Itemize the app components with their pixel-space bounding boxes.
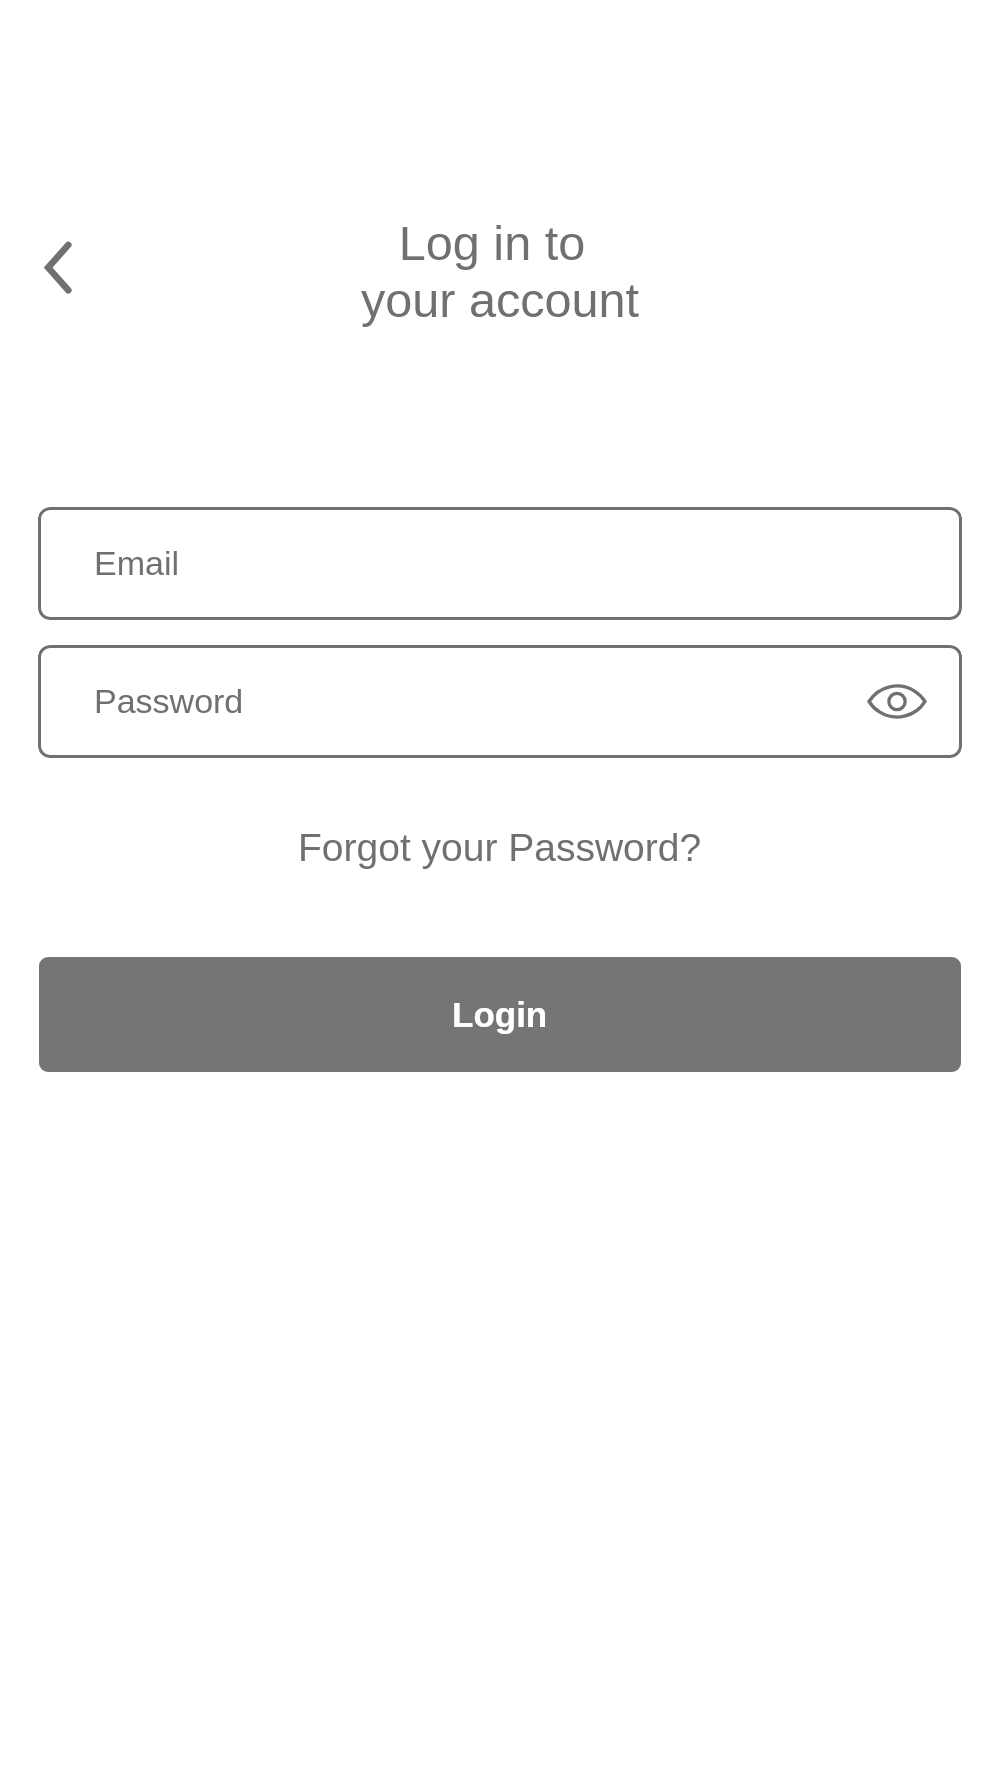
button[interactable]: Show password — [859, 663, 935, 739]
button[interactable]: Password — [38, 645, 962, 758]
staticText: your account — [0, 273, 1000, 327]
button[interactable]: Forgot your Password? — [292, 822, 708, 874]
button[interactable]: Login — [39, 957, 961, 1072]
staticText: Login — [452, 995, 548, 1034]
staticText: Log in to — [0, 216, 992, 270]
button[interactable]: Email — [38, 507, 962, 620]
button[interactable]: Back — [8, 228, 88, 308]
staticText: Password — [94, 682, 244, 720]
staticText: Email — [94, 544, 180, 582]
